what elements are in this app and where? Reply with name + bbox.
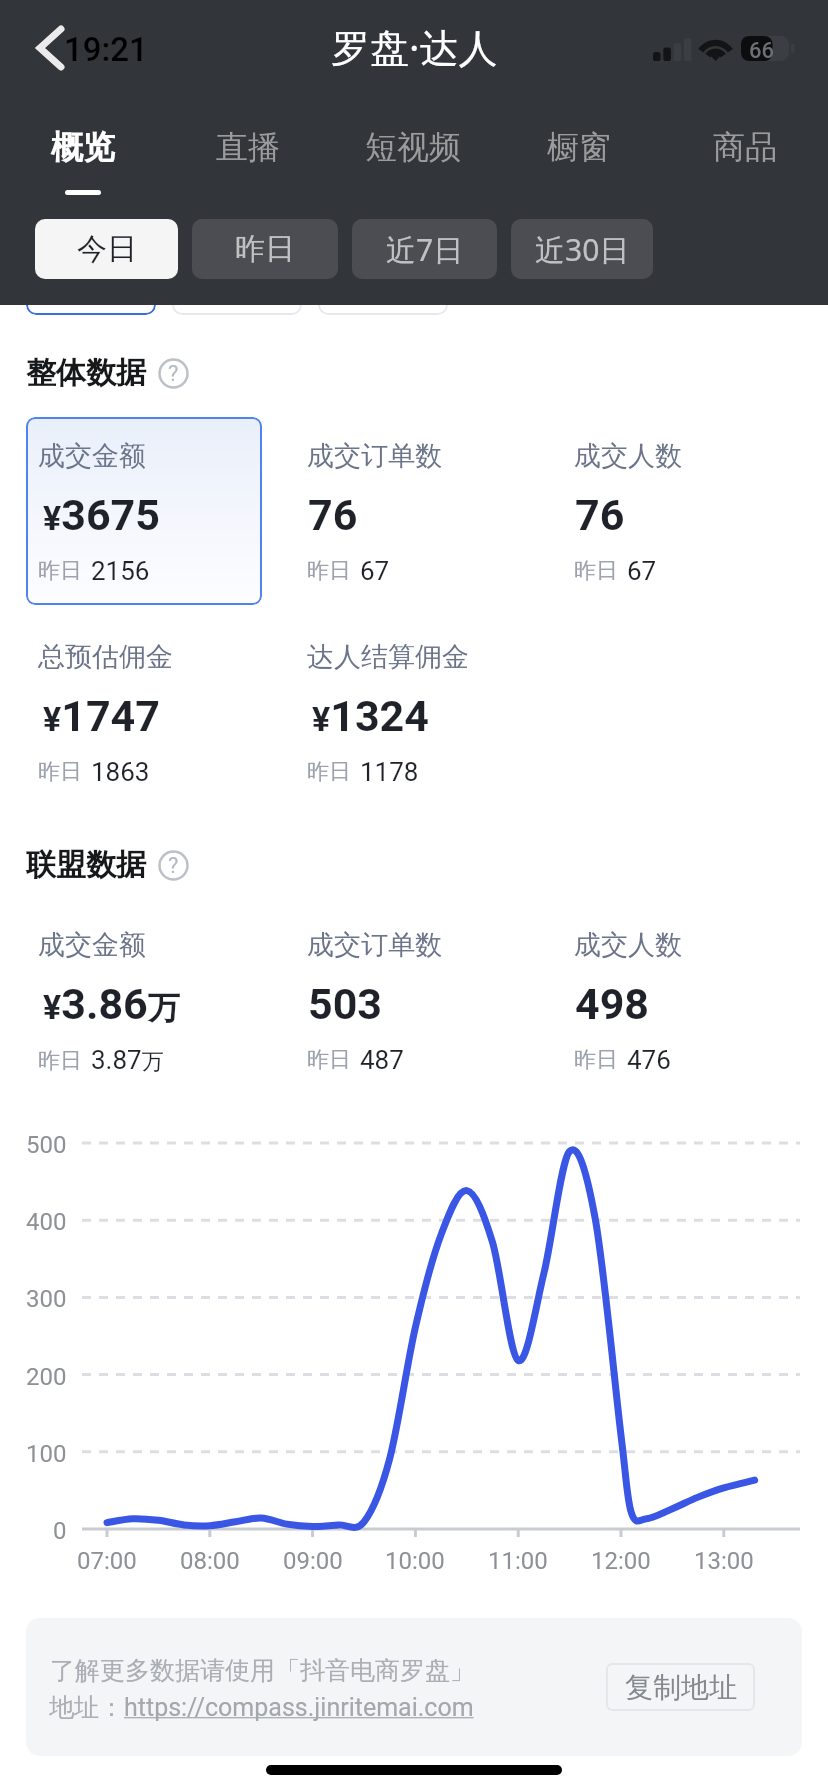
- staticText: 商品: [713, 127, 777, 167]
- staticText: 整体数据: [26, 354, 146, 392]
- staticText: 联盟数据: [26, 846, 146, 884]
- staticText: 100: [26, 1440, 67, 1468]
- staticText: 76: [575, 490, 625, 540]
- staticText: 成交人数: [574, 439, 682, 473]
- staticText: 76: [308, 490, 358, 540]
- staticText: 1178: [360, 757, 419, 787]
- staticText: 500: [26, 1131, 67, 1159]
- staticText: 67: [627, 556, 657, 586]
- staticText: 成交人数: [574, 928, 682, 962]
- button[interactable]: 复制地址: [606, 1663, 755, 1711]
- button[interactable]: [26, 417, 262, 605]
- staticText: ¥3.86万: [43, 979, 180, 1029]
- staticText: 达人结算佣金: [307, 640, 469, 674]
- button[interactable]: 短视频: [330, 127, 496, 217]
- staticText: 200: [26, 1363, 67, 1391]
- staticText: 昨日: [235, 230, 295, 268]
- staticText: ¥1747: [43, 691, 160, 741]
- staticText: 复制地址: [625, 1670, 737, 1705]
- staticText: 300: [26, 1285, 67, 1313]
- staticText: 今日: [77, 230, 137, 268]
- button[interactable]: 今日: [35, 219, 178, 279]
- button[interactable]: 商品: [662, 127, 828, 217]
- staticText: 地址：: [49, 1692, 124, 1723]
- staticText: 10:00: [385, 1547, 445, 1575]
- staticText: 400: [26, 1208, 67, 1236]
- staticText: 12:00: [591, 1547, 651, 1575]
- button[interactable]: 昨日: [192, 219, 338, 279]
- staticText: 罗盘·达人: [331, 20, 498, 73]
- staticText: 成交金额: [38, 928, 146, 962]
- staticText: 13:00: [694, 1547, 754, 1575]
- button[interactable]: 直播: [165, 127, 330, 217]
- staticText: 11:00: [488, 1547, 548, 1575]
- staticText: https://compass.jinritemai.com: [124, 1693, 474, 1722]
- staticText: 487: [360, 1045, 404, 1075]
- button[interactable]: [318, 305, 448, 315]
- staticText: ?: [168, 361, 179, 387]
- staticText: 直播: [216, 127, 280, 167]
- staticText: 19:21: [64, 30, 148, 69]
- button[interactable]: Back: [28, 22, 76, 74]
- staticText: 67: [360, 556, 390, 586]
- staticText: ?: [168, 853, 179, 879]
- button[interactable]: [26, 305, 156, 315]
- staticText: 07:00: [77, 1547, 137, 1575]
- staticText: 2156: [91, 556, 150, 586]
- staticText: 昨日: [38, 758, 82, 786]
- staticText: 概览: [51, 127, 115, 167]
- button[interactable]: 近7日: [352, 219, 497, 279]
- staticText: 3.87万: [91, 1045, 164, 1076]
- staticText: 503: [308, 979, 383, 1029]
- button[interactable]: 概览: [0, 127, 165, 217]
- staticText: 橱窗: [547, 127, 611, 167]
- button[interactable]: Help: [158, 358, 189, 389]
- staticText: 09:00: [283, 1547, 343, 1575]
- staticText: 成交订单数: [307, 928, 442, 962]
- button[interactable]: 橱窗: [496, 127, 662, 217]
- staticText: 昨日: [574, 557, 618, 585]
- staticText: 总预估佣金: [38, 640, 173, 674]
- staticText: 短视频: [365, 127, 461, 167]
- staticText: 昨日: [307, 557, 351, 585]
- button[interactable]: Help: [158, 850, 189, 881]
- staticText: 0: [53, 1517, 67, 1545]
- staticText: 了解更多数据请使用「抖音电商罗盘」: [50, 1655, 475, 1686]
- staticText: 昨日: [574, 1046, 618, 1074]
- staticText: 昨日: [38, 1047, 82, 1075]
- staticText: ¥3675: [43, 490, 160, 540]
- staticText: 476: [627, 1045, 671, 1075]
- staticText: ¥1324: [312, 691, 429, 741]
- staticText: 成交金额: [38, 439, 146, 473]
- staticText: 成交订单数: [307, 439, 442, 473]
- staticText: 昨日: [38, 557, 82, 585]
- staticText: 08:00: [180, 1547, 240, 1575]
- staticText: 498: [575, 979, 650, 1029]
- staticText: 66: [749, 38, 775, 64]
- button[interactable]: [172, 305, 302, 315]
- staticText: 1863: [91, 757, 150, 787]
- button[interactable]: 近30日: [511, 219, 653, 279]
- staticText: 近30日: [535, 229, 630, 270]
- staticText: 昨日: [307, 1046, 351, 1074]
- staticText: 近7日: [386, 229, 464, 270]
- staticText: 昨日: [307, 758, 351, 786]
